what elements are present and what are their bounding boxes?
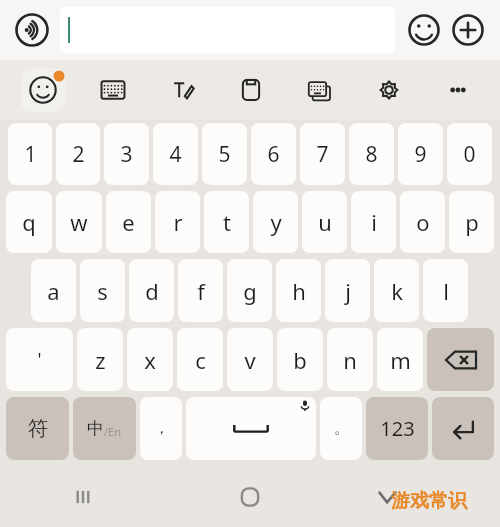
staticText: 123 bbox=[380, 415, 415, 442]
button[interactable]: t bbox=[204, 191, 249, 253]
button[interactable]: 4 bbox=[153, 123, 198, 185]
staticText: l bbox=[443, 276, 449, 306]
staticText: 游戏常识 bbox=[391, 489, 467, 513]
staticText: o bbox=[416, 207, 430, 237]
button[interactable]: b bbox=[277, 328, 323, 391]
button[interactable]: Emoji sticker bbox=[8, 60, 78, 120]
button[interactable]: u bbox=[302, 191, 347, 253]
button[interactable]: Comma bbox=[140, 397, 182, 460]
staticText: x bbox=[144, 345, 156, 375]
staticText: 0 bbox=[463, 140, 476, 169]
staticText: 7 bbox=[316, 140, 329, 169]
staticText: s bbox=[97, 276, 108, 306]
staticText: r bbox=[173, 207, 183, 237]
staticText: k bbox=[391, 276, 403, 306]
button[interactable]: Back bbox=[333, 467, 500, 527]
button[interactable]: n bbox=[327, 328, 373, 391]
button[interactable]: c bbox=[177, 328, 223, 391]
staticText: f bbox=[197, 276, 205, 306]
staticText: p bbox=[465, 207, 479, 237]
button[interactable]: Handwriting bbox=[147, 60, 216, 120]
button[interactable]: f bbox=[178, 259, 223, 322]
button[interactable]: Apostrophe bbox=[6, 328, 73, 391]
staticText: ' bbox=[37, 347, 42, 372]
button[interactable]: 2 bbox=[56, 123, 100, 185]
button[interactable]: Space bbox=[186, 397, 316, 460]
button[interactable]: 6 bbox=[251, 123, 296, 185]
button[interactable]: i bbox=[351, 191, 396, 253]
button[interactable]: m bbox=[377, 328, 423, 391]
staticText: 5 bbox=[218, 140, 231, 169]
staticText: q bbox=[22, 207, 36, 237]
button[interactable]: More options bbox=[423, 60, 492, 120]
button[interactable]: a bbox=[31, 259, 76, 322]
button[interactable]: h bbox=[276, 259, 321, 322]
button[interactable]: d bbox=[129, 259, 174, 322]
button[interactable]: k bbox=[374, 259, 419, 322]
staticText: y bbox=[270, 207, 282, 237]
button[interactable]: Recents bbox=[0, 467, 166, 527]
staticText: a bbox=[47, 276, 60, 306]
button[interactable]: Enter bbox=[432, 397, 494, 460]
staticText: 4 bbox=[169, 140, 182, 169]
button[interactable]: s bbox=[80, 259, 125, 322]
staticText: n bbox=[343, 345, 357, 375]
button[interactable]: Keyboard bbox=[78, 60, 147, 120]
staticText: g bbox=[243, 276, 257, 306]
staticText: m bbox=[390, 345, 411, 375]
button[interactable]: Language bbox=[73, 397, 136, 460]
staticText: 6 bbox=[267, 140, 280, 169]
staticText: u bbox=[318, 207, 332, 237]
button[interactable]: 符 bbox=[6, 397, 69, 460]
staticText: c bbox=[195, 345, 206, 375]
button[interactable]: r bbox=[155, 191, 200, 253]
button[interactable]: 0 bbox=[447, 123, 492, 185]
button[interactable]: Home bbox=[166, 467, 333, 527]
button[interactable]: 1 bbox=[8, 123, 52, 185]
staticText: j bbox=[345, 276, 351, 306]
button[interactable]: Backspace bbox=[427, 328, 494, 391]
button[interactable]: 7 bbox=[300, 123, 345, 185]
staticText: h bbox=[292, 276, 306, 306]
button[interactable]: g bbox=[227, 259, 272, 322]
button[interactable]: 3 bbox=[104, 123, 149, 185]
button[interactable]: 8 bbox=[349, 123, 394, 185]
staticText: 1 bbox=[24, 140, 37, 169]
button[interactable]: 9 bbox=[398, 123, 443, 185]
button[interactable]: Voice input bbox=[10, 8, 54, 52]
button[interactable]: o bbox=[400, 191, 445, 253]
button[interactable]: w bbox=[56, 191, 102, 253]
staticText: t bbox=[223, 207, 231, 237]
staticText: w bbox=[70, 207, 88, 237]
staticText: d bbox=[145, 276, 159, 306]
staticText: /En bbox=[104, 424, 122, 439]
button[interactable]: x bbox=[127, 328, 173, 391]
button[interactable]: 123 bbox=[366, 397, 428, 460]
button[interactable]: q bbox=[6, 191, 52, 253]
button[interactable]: Add bbox=[446, 8, 490, 52]
button[interactable]: Clipboard bbox=[216, 60, 285, 120]
button[interactable]: l bbox=[423, 259, 468, 322]
staticText: 。 bbox=[334, 419, 349, 438]
button[interactable]: Settings bbox=[354, 60, 423, 120]
staticText: i bbox=[371, 207, 377, 237]
staticText: e bbox=[122, 207, 135, 237]
button[interactable]: p bbox=[449, 191, 494, 253]
staticText: 2 bbox=[72, 140, 85, 169]
button[interactable]: Floating keyboard bbox=[285, 60, 354, 120]
button[interactable]: Emoji bbox=[402, 8, 446, 52]
staticText: 9 bbox=[414, 140, 427, 169]
staticText: 8 bbox=[365, 140, 378, 169]
button[interactable]: z bbox=[77, 328, 123, 391]
button[interactable]: 5 bbox=[202, 123, 247, 185]
staticText: 中 bbox=[87, 418, 104, 439]
staticText: z bbox=[95, 345, 106, 375]
button[interactable] bbox=[60, 7, 395, 53]
staticText: ， bbox=[154, 419, 169, 438]
button[interactable]: e bbox=[106, 191, 151, 253]
button[interactable]: j bbox=[325, 259, 370, 322]
staticText: b bbox=[293, 345, 307, 375]
button[interactable]: y bbox=[253, 191, 298, 253]
button[interactable]: v bbox=[227, 328, 273, 391]
button[interactable]: Period bbox=[320, 397, 362, 460]
